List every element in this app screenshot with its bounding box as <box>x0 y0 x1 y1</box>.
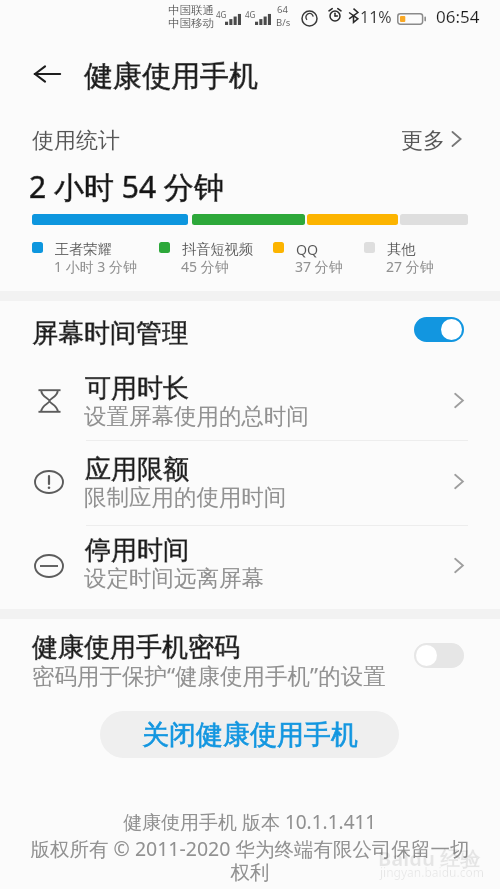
staticText: 4G <box>216 9 227 20</box>
button[interactable]: Switch off <box>414 643 464 668</box>
button[interactable] <box>0 360 500 441</box>
staticText: 更多 <box>401 127 445 155</box>
staticText: 王者荣耀 <box>55 240 112 258</box>
staticText: 45 分钟 <box>181 257 229 276</box>
staticText: 停用时间 <box>85 534 189 567</box>
staticText: 屏幕时间管理 <box>32 317 188 350</box>
staticText: 健康使用手机 <box>84 58 258 95</box>
staticText: 健康使用手机密码 <box>32 631 240 664</box>
staticText: 其他 <box>387 240 416 258</box>
staticText: QQ <box>296 240 319 259</box>
button[interactable] <box>0 525 500 606</box>
staticText: 设定时间远离屏幕 <box>84 564 264 592</box>
staticText: 2 小时 54 分钟 <box>29 166 224 207</box>
staticText: 健康使用手机 版本 10.1.1.411 <box>123 809 377 835</box>
button[interactable]: 关闭健康使用手机 <box>100 711 399 758</box>
button[interactable]: Switch off <box>0 622 500 694</box>
staticText: 设置屏幕使用的总时间 <box>84 402 309 430</box>
staticText: 健康使用手机 <box>84 58 258 95</box>
staticText: 关闭健康使用手机 <box>142 718 358 752</box>
staticText: 关闭健康使用手机 <box>142 718 358 752</box>
staticText: jingyan.baidu.com <box>380 864 484 880</box>
staticText: 应用限额 <box>85 453 189 486</box>
staticText: 2 小时 54 分钟 <box>29 166 224 207</box>
staticText: 健康使用手机密码 <box>32 631 240 664</box>
staticText: 中国联通 <box>168 3 214 17</box>
staticText: 中国移动 <box>168 16 214 30</box>
button[interactable] <box>0 441 500 522</box>
button[interactable]: 使用统计 <box>0 116 500 162</box>
button[interactable]: Switch on <box>414 317 464 342</box>
staticText: 屏幕时间管理 <box>32 317 188 350</box>
staticText: 11% <box>360 6 392 28</box>
staticText: 可用时长 <box>85 372 189 405</box>
staticText: 使用统计 <box>32 127 120 155</box>
staticText: 1 小时 3 分钟 <box>54 257 137 276</box>
staticText: 抖音短视频 <box>182 240 253 258</box>
staticText: 停用时间 <box>85 534 189 567</box>
staticText: 37 分钟 <box>295 257 343 276</box>
staticText: B/s <box>276 16 291 29</box>
staticText: 27 分钟 <box>386 257 434 276</box>
staticText: 06:54 <box>436 5 480 28</box>
staticText: 版权所有 © 2011-2020 华为终端有限公司保留一切权利 <box>27 835 473 885</box>
staticText: 应用限额 <box>85 453 189 486</box>
staticText: 限制应用的使用时间 <box>84 483 287 511</box>
button[interactable]: Back <box>27 54 67 94</box>
staticText: 4G <box>245 9 256 20</box>
staticText: 密码用于保护“健康使用手机”的设置 <box>32 660 386 691</box>
staticText: 64 <box>277 3 288 16</box>
staticText: 可用时长 <box>85 372 189 405</box>
staticText: Baidu 经验 <box>378 845 481 872</box>
